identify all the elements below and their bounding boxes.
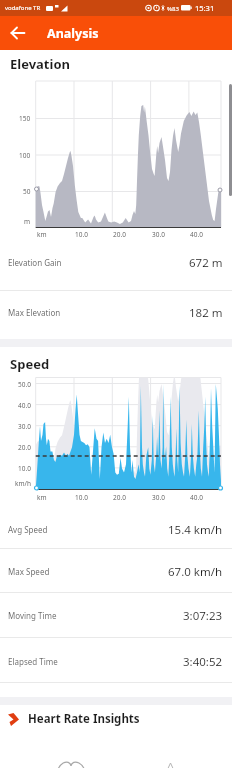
staticText: 15:31 <box>195 3 215 13</box>
staticText: 3:07:23 <box>183 608 223 624</box>
staticText: 50 <box>23 187 31 196</box>
staticText: Elevation <box>10 55 70 73</box>
staticText: 30.0 <box>152 230 165 239</box>
staticText: 100 <box>19 151 31 160</box>
staticText: 20.0 <box>18 443 31 452</box>
staticText: 67.0 km/h <box>168 564 223 580</box>
staticText: 40.0 <box>190 493 203 502</box>
staticText: 40.0 <box>190 230 203 239</box>
staticText: 40.0 <box>18 401 31 410</box>
staticText: 3:40:52 <box>183 654 223 670</box>
staticText: Max Speed <box>8 566 50 577</box>
staticText: vodafone TR <box>5 4 41 12</box>
staticText: Max Elevation <box>8 307 61 318</box>
button[interactable] <box>0 244 232 290</box>
staticText: 30.0 <box>18 422 31 431</box>
staticText: Elevation Gain <box>8 257 62 268</box>
staticText: 20.0 <box>113 493 126 502</box>
staticText: 30.0 <box>152 493 165 502</box>
staticText: 10.0 <box>18 464 31 473</box>
staticText: Heart Rate Insights <box>28 711 140 727</box>
staticText: 672 m <box>189 255 223 271</box>
staticText: Analysis <box>47 25 99 42</box>
staticText: Moving Time <box>8 610 57 621</box>
staticText: km/h <box>15 479 31 488</box>
staticText: 50.0 <box>18 380 31 389</box>
button[interactable] <box>6 21 30 45</box>
staticText: 20.0 <box>113 230 126 239</box>
staticText: Elapsed Time <box>8 656 58 667</box>
staticText: 150 <box>19 114 31 123</box>
staticText: m <box>24 217 31 226</box>
staticText: 10.0 <box>75 493 88 502</box>
staticText: Avg Speed <box>8 524 48 535</box>
staticText: Speed <box>10 355 50 373</box>
staticText: 182 m <box>189 305 223 321</box>
staticText: km <box>37 230 47 239</box>
button[interactable]: Heart Rate Insights <box>0 708 232 730</box>
staticText: km <box>37 493 47 502</box>
staticText: 15.4 km/h <box>168 522 223 538</box>
staticText: %83 <box>167 5 179 13</box>
staticText: 10.0 <box>75 230 88 239</box>
